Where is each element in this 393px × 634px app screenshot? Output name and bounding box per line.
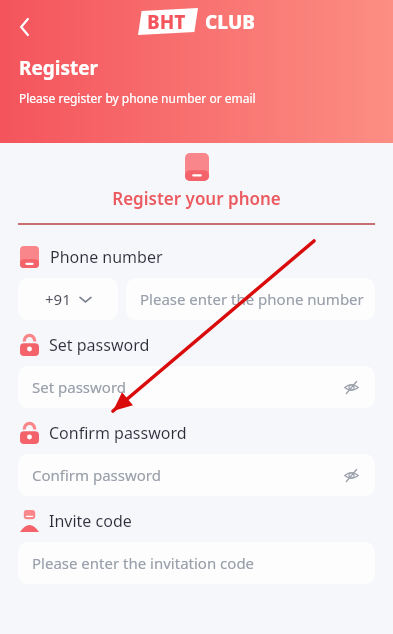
- button[interactable]: +91: [18, 278, 118, 320]
- staticText: Confirm password: [49, 422, 187, 444]
- staticText: CLUB: [205, 9, 255, 35]
- button[interactable]: Show password: [341, 377, 361, 397]
- staticText: Please enter the invitation code: [32, 553, 255, 573]
- button[interactable]: Back: [8, 10, 42, 44]
- button[interactable]: Set password: [18, 366, 375, 408]
- button[interactable]: Show password: [341, 465, 361, 485]
- button[interactable]: Please enter the invitation code: [18, 542, 375, 584]
- staticText: Set password: [32, 377, 127, 397]
- staticText: Please enter the phone number: [140, 289, 364, 309]
- staticText: Set password: [49, 334, 150, 356]
- button[interactable]: Confirm password: [18, 454, 375, 496]
- staticText: Phone number: [50, 246, 163, 268]
- staticText: +91: [45, 289, 71, 309]
- staticText: BHT: [147, 9, 186, 35]
- staticText: Confirm password: [32, 465, 161, 485]
- staticText: Invite code: [49, 510, 132, 532]
- staticText: Register: [19, 55, 99, 81]
- staticText: Register your phone: [0, 187, 393, 210]
- button[interactable]: Please enter the phone number: [126, 278, 375, 320]
- staticText: Please register by phone number or email: [19, 90, 256, 106]
